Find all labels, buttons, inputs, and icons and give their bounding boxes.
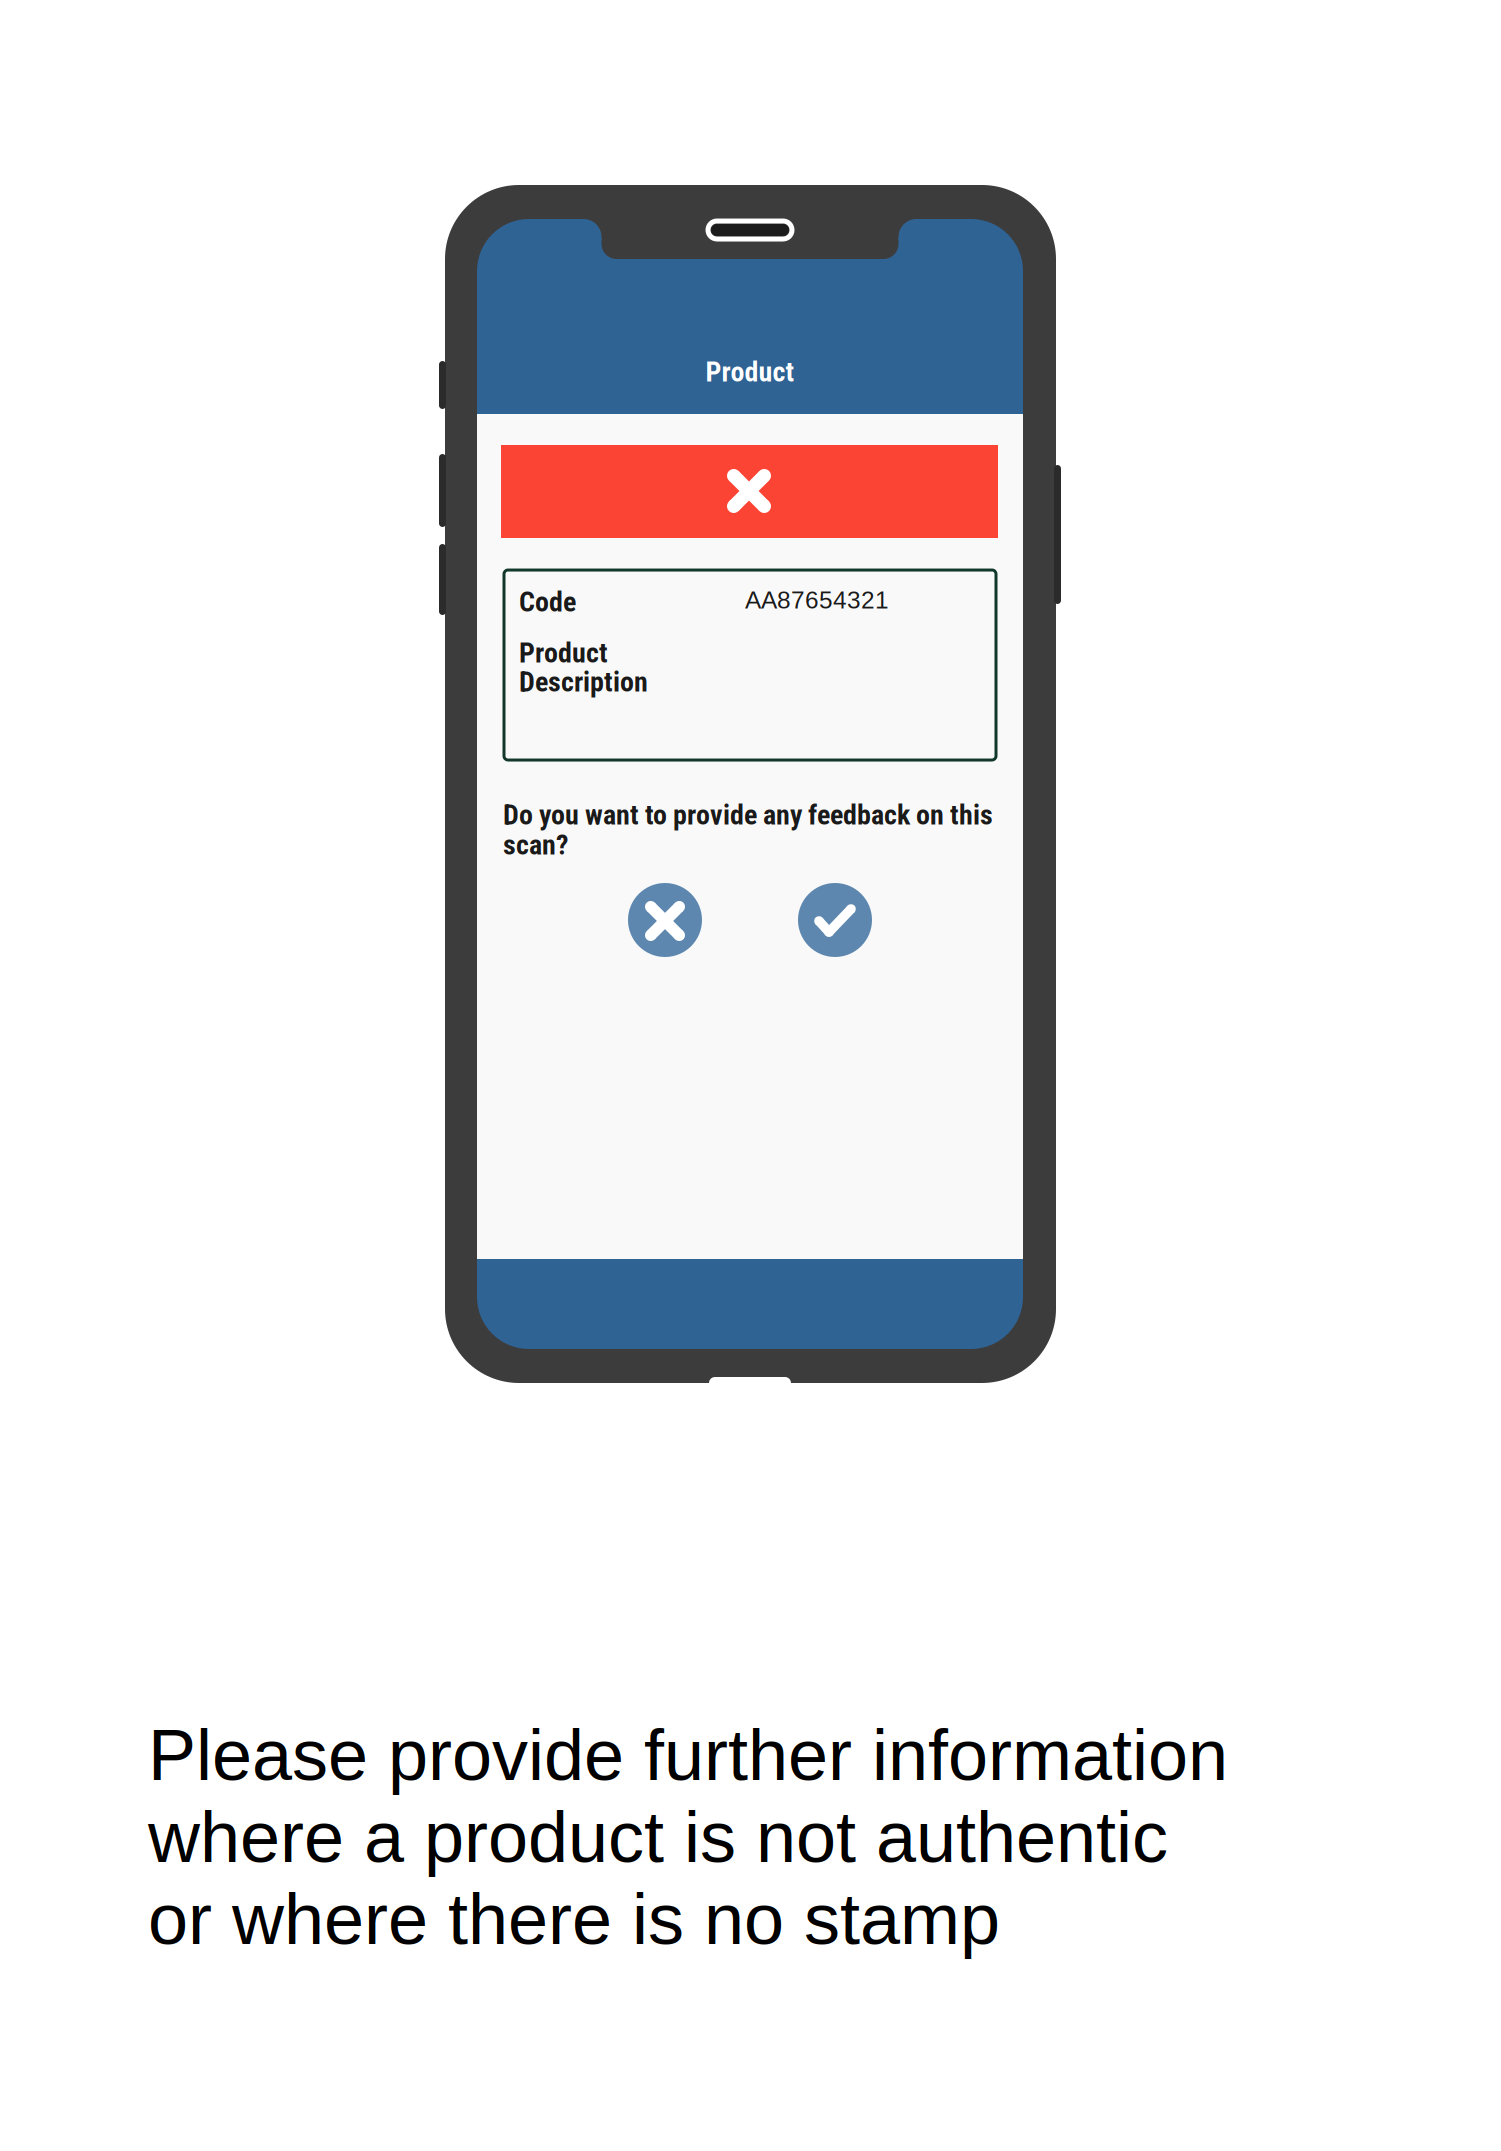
staticText: Code xyxy=(519,586,576,618)
staticText: where a product is not authentic xyxy=(148,1797,1168,1877)
staticText: Product xyxy=(705,356,794,388)
staticText: scan? xyxy=(503,829,569,861)
staticText: AA87654321 xyxy=(745,586,889,614)
button[interactable]: Product is not authentic xyxy=(0,0,1501,2151)
button[interactable]: Yes, give feedback xyxy=(0,0,1501,2151)
button[interactable]: No, skip feedback xyxy=(0,0,1501,2151)
staticText: Do you want to provide any feedback on t… xyxy=(503,799,993,831)
staticText: Description xyxy=(519,666,648,698)
staticText: Product xyxy=(519,637,608,669)
staticText: Please provide further information xyxy=(148,1715,1228,1795)
staticText: or where there is no stamp xyxy=(148,1879,1000,1959)
